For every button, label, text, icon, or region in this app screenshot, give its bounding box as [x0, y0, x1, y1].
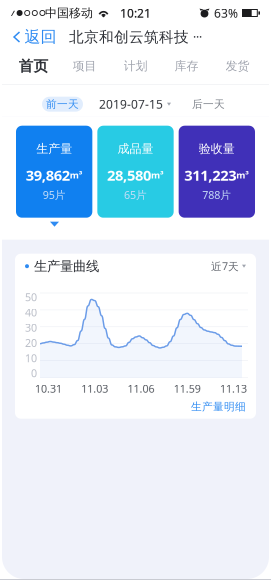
staticText: 788片: [202, 188, 231, 202]
staticText: 63%: [214, 5, 238, 21]
staticText: 20: [25, 336, 37, 350]
staticText: 30: [25, 320, 37, 335]
staticText: 生产量: [36, 141, 72, 156]
staticText: 前一天: [46, 98, 79, 111]
staticText: 28,580: [107, 165, 151, 185]
staticText: 生产量明细: [191, 400, 246, 413]
staticText: 北京和创云筑科技: [69, 28, 189, 46]
staticText: 库存: [174, 59, 198, 73]
staticText: 11.59: [174, 382, 201, 396]
staticText: 10: [25, 351, 37, 365]
button[interactable]: 生产量明细: [191, 395, 256, 418]
staticText: 11.06: [127, 382, 154, 396]
button[interactable]: 库存: [161, 48, 212, 84]
staticText: 50: [25, 290, 37, 304]
staticText: 返回: [24, 27, 56, 47]
staticText: 项目: [72, 59, 96, 73]
staticText: 10:21: [120, 5, 151, 21]
staticText: 40: [25, 305, 37, 319]
staticText: ···: [193, 29, 202, 45]
staticText: 成品量: [117, 141, 153, 156]
staticText: 11.13: [220, 382, 247, 396]
staticText: 0: [31, 366, 37, 380]
staticText: 10.31: [35, 382, 62, 396]
button[interactable]: 发货: [212, 48, 263, 84]
staticText: 生产量曲线: [34, 258, 99, 274]
button[interactable]: 后一天: [188, 97, 229, 112]
button[interactable]: 2019-07-15: [99, 97, 171, 112]
staticText: 95片: [43, 188, 66, 202]
staticText: 11.03: [81, 382, 108, 396]
staticText: m³: [151, 169, 164, 181]
staticText: 中国移动: [45, 6, 93, 20]
button[interactable]: 成品量: [97, 126, 174, 218]
staticText: 2019-07-15: [99, 96, 163, 112]
staticText: 39,862: [26, 165, 70, 185]
staticText: m³: [70, 169, 83, 181]
button[interactable]: 近7天: [211, 255, 246, 277]
staticText: 发货: [225, 59, 249, 73]
button[interactable]: 验收量: [179, 126, 255, 218]
staticText: 65片: [124, 188, 147, 202]
staticText: 首页: [18, 57, 48, 75]
button[interactable]: 返回: [2, 26, 64, 48]
button[interactable]: 生产量: [16, 126, 92, 218]
staticText: 后一天: [192, 98, 225, 111]
button[interactable]: 计划: [110, 48, 161, 84]
staticText: 近7天: [211, 259, 239, 273]
button[interactable]: 首页: [8, 48, 59, 84]
staticText: 计划: [123, 59, 147, 73]
staticText: m³: [236, 169, 249, 181]
button[interactable]: 项目: [59, 48, 110, 84]
button[interactable]: 前一天: [42, 97, 83, 112]
staticText: 验收量: [199, 141, 235, 156]
staticText: 311,223: [184, 165, 236, 185]
